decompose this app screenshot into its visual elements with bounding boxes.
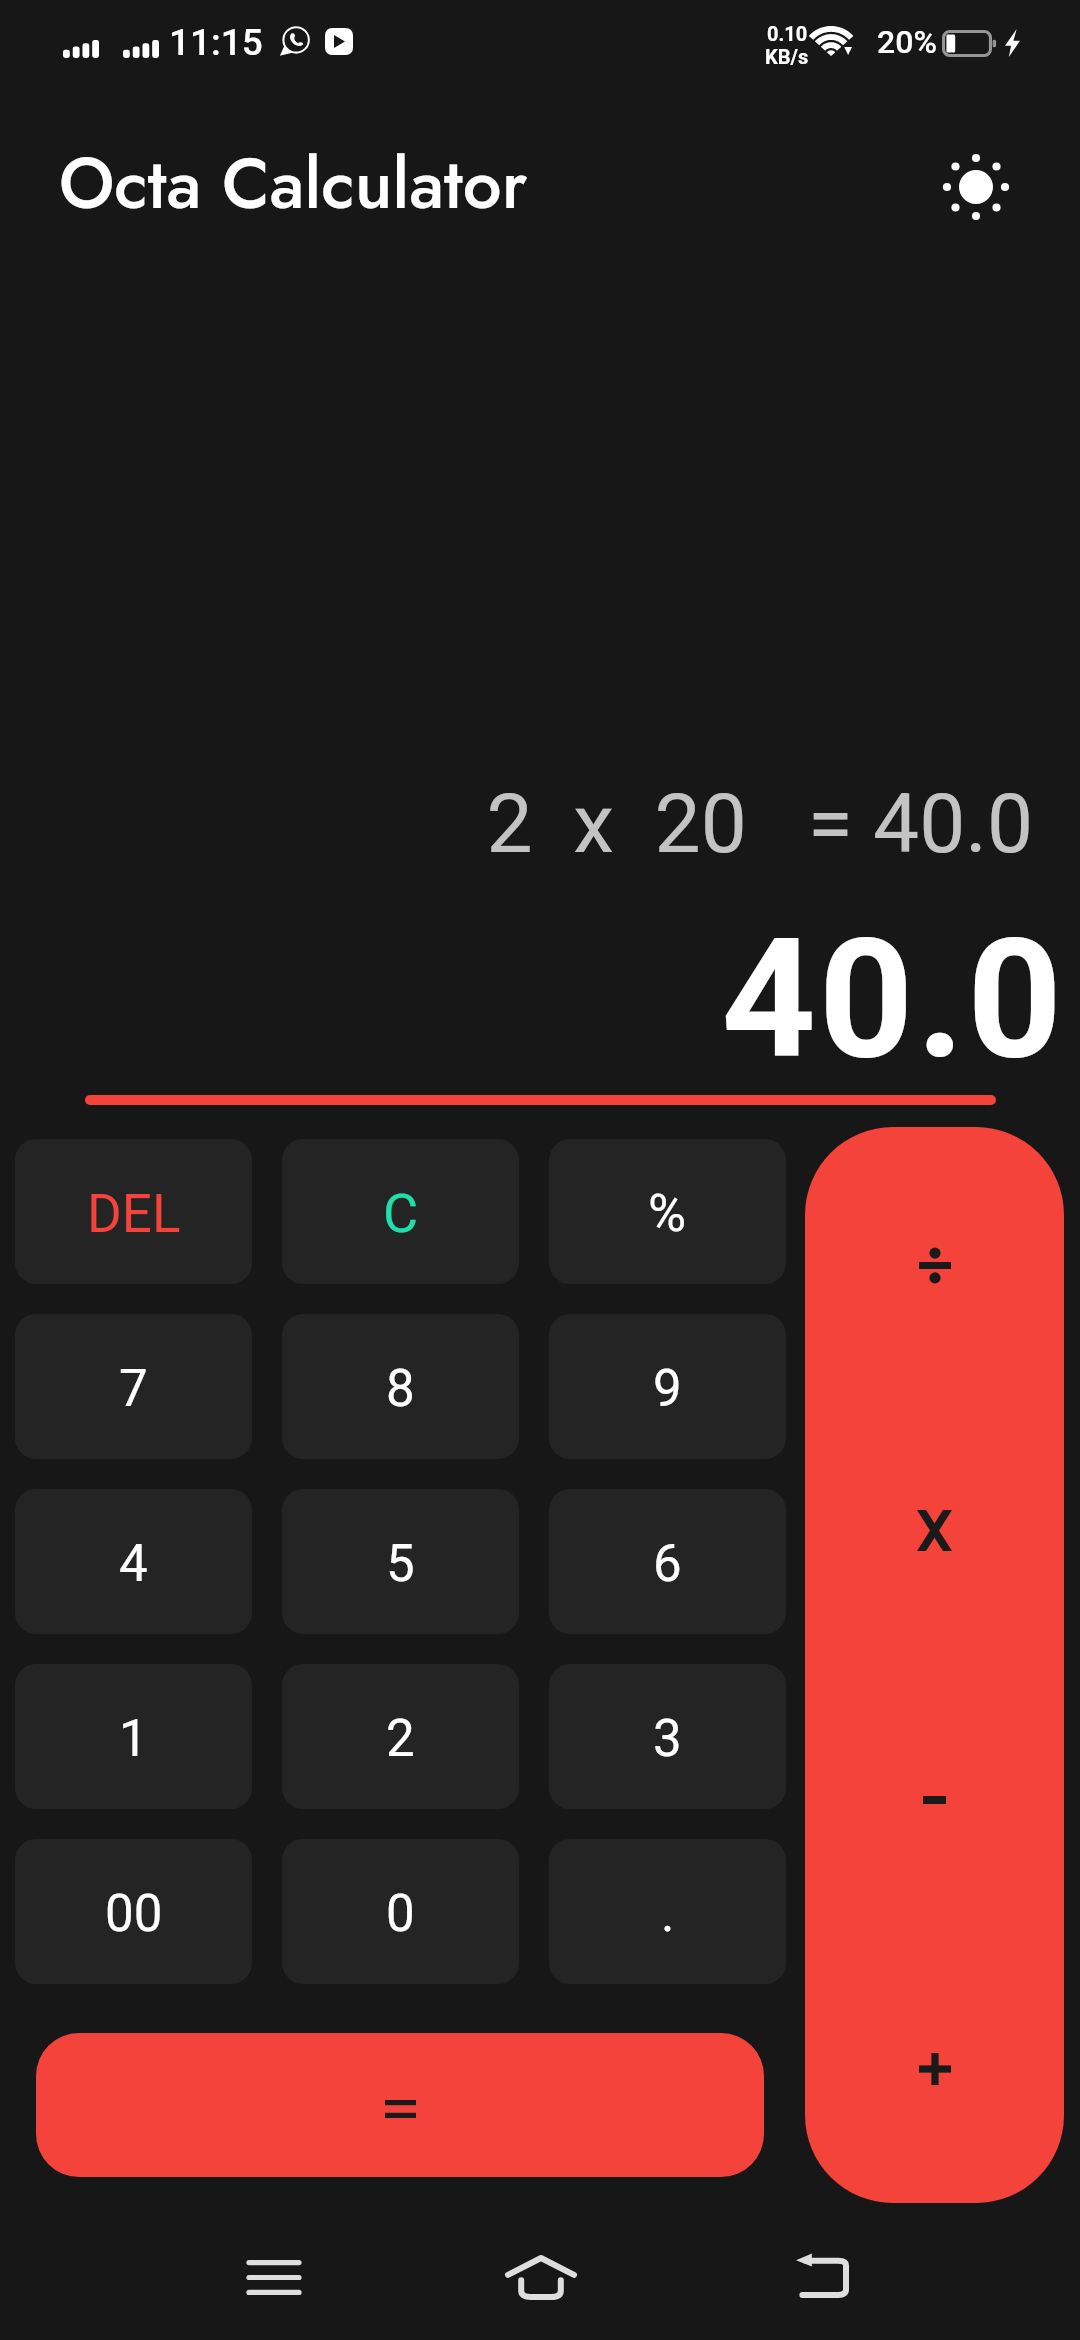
staticText: 0.10 (767, 22, 808, 45)
button[interactable]: 6 (549, 1489, 786, 1634)
button[interactable]: 8 (282, 1314, 519, 1459)
button[interactable]: . (549, 1839, 786, 1984)
button[interactable]: 4 (15, 1489, 252, 1634)
button[interactable]: Multiply (805, 1396, 1064, 1665)
staticText: . (661, 1884, 675, 1944)
staticText: 20% (877, 23, 937, 61)
staticText: 2 (386, 1709, 415, 1769)
staticText: 7 (119, 1359, 148, 1419)
button[interactable]: Back (762, 2223, 882, 2331)
staticText: Octa Calculator (59, 134, 528, 234)
button[interactable]: Equals (36, 2033, 764, 2177)
button[interactable]: Home (481, 2223, 601, 2331)
staticText: 6 (653, 1534, 682, 1594)
staticText: 8 (386, 1359, 415, 1419)
staticText: 11:15 (169, 21, 263, 64)
staticText: 0 (386, 1884, 415, 1944)
staticText: 5 (386, 1534, 415, 1594)
button[interactable]: Toggle theme (917, 128, 1035, 246)
staticText: 2 x 20 = 40.0 (0, 776, 1033, 872)
button[interactable]: Divide (805, 1127, 1064, 1396)
button[interactable]: C (282, 1139, 519, 1284)
staticText: DEL (87, 1183, 181, 1245)
button[interactable]: % (549, 1139, 786, 1284)
staticText: C (383, 1182, 419, 1245)
button[interactable]: Add (805, 1934, 1064, 2203)
staticText: KB/s (765, 45, 809, 68)
staticText: 3 (653, 1709, 682, 1769)
staticText: 4 (119, 1534, 148, 1594)
button[interactable]: Subtract (805, 1665, 1064, 1934)
button[interactable]: 1 (15, 1664, 252, 1809)
staticText: 1 (119, 1709, 148, 1769)
staticText: % (648, 1183, 687, 1244)
button[interactable]: DEL (15, 1139, 252, 1284)
staticText: 00 (105, 1884, 163, 1944)
button[interactable]: 0 (282, 1839, 519, 1984)
button[interactable]: 7 (15, 1314, 252, 1459)
button[interactable]: 5 (282, 1489, 519, 1634)
staticText: 40.0 (0, 903, 1065, 1096)
button[interactable]: 9 (549, 1314, 786, 1459)
button[interactable]: 2 (282, 1664, 519, 1809)
button[interactable]: 00 (15, 1839, 252, 1984)
button[interactable]: 3 (549, 1664, 786, 1809)
staticText: 9 (653, 1359, 682, 1419)
button[interactable]: Recent apps (214, 2223, 334, 2331)
